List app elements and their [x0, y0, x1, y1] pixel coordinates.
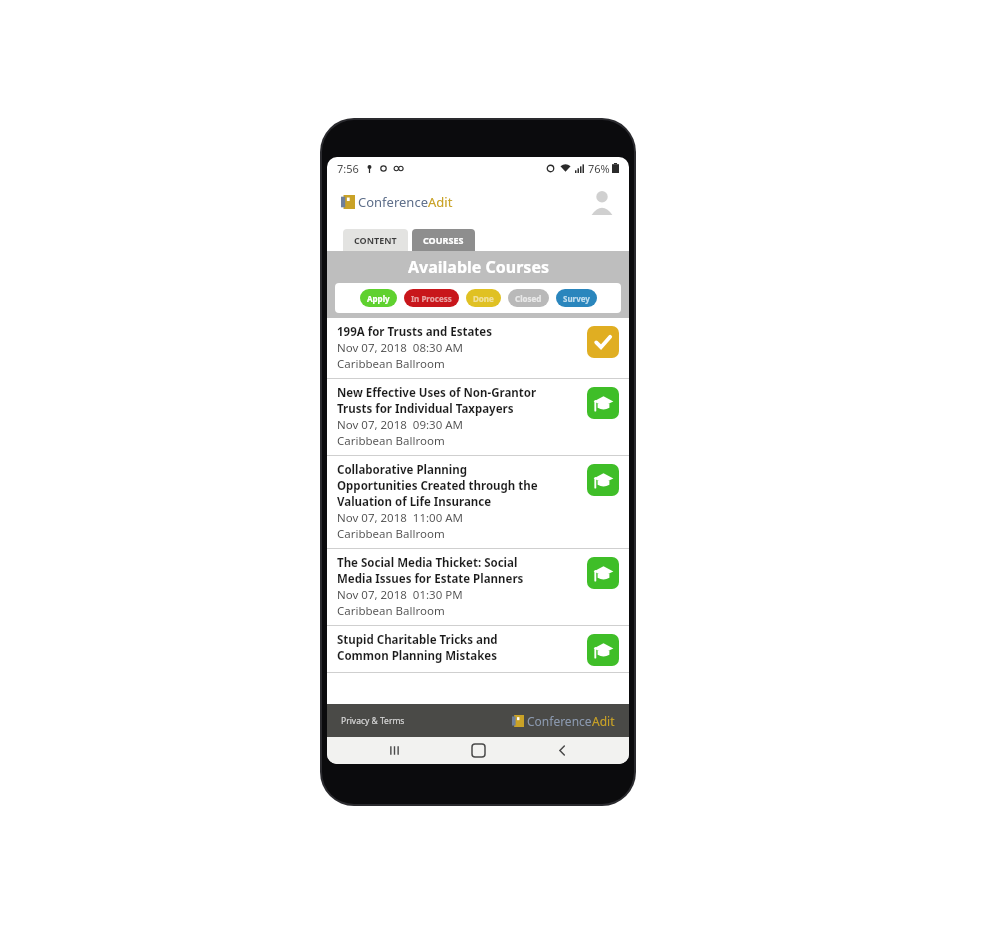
- staticText: 199A for Trusts and Estates: [337, 324, 492, 340]
- button[interactable]: Course: [587, 464, 619, 496]
- staticText: Valuation of Life Insurance: [337, 494, 492, 510]
- staticText: Trusts for Individual Taxpayers: [337, 401, 514, 417]
- button[interactable]: The Social Media Thicket: Social: [327, 549, 629, 626]
- button[interactable]: Stupid Charitable Tricks and: [327, 626, 629, 673]
- button[interactable]: CONTENT: [343, 229, 408, 251]
- button[interactable]: Apply: [360, 289, 397, 307]
- staticText: Caribbean Ballroom: [337, 603, 445, 619]
- staticText: Adit: [592, 713, 615, 729]
- staticText: Available Courses: [408, 256, 549, 278]
- staticText: Caribbean Ballroom: [337, 356, 445, 372]
- button[interactable]: Privacy & Terms: [341, 715, 405, 727]
- staticText: Caribbean Ballroom: [337, 433, 445, 449]
- staticText: Conference: [358, 193, 428, 211]
- button[interactable]: Back: [545, 737, 579, 764]
- button[interactable]: Profile: [587, 187, 617, 217]
- staticText: Adit: [428, 193, 453, 211]
- staticText: Apply: [367, 293, 390, 304]
- button[interactable]: COURSES: [412, 229, 475, 251]
- staticText: Nov 07, 2018 09:30 AM: [337, 417, 463, 433]
- staticText: Nov 07, 2018 01:30 PM: [337, 587, 463, 603]
- staticText: Closed: [515, 293, 542, 304]
- button[interactable]: Closed: [508, 289, 549, 307]
- button[interactable]: New Effective Uses of Non-Grantor: [327, 379, 629, 456]
- staticText: Conference: [527, 713, 592, 729]
- staticText: Collaborative Planning: [337, 462, 468, 478]
- staticText: Opportunities Created through the: [337, 478, 538, 494]
- staticText: In Process: [411, 293, 452, 304]
- button[interactable]: Recents: [377, 737, 411, 764]
- button[interactable]: Completed: [587, 326, 619, 358]
- button[interactable]: 199A for Trusts and Estates: [327, 318, 629, 379]
- staticText: Privacy & Terms: [341, 715, 405, 727]
- staticText: Common Planning Mistakes: [337, 648, 497, 664]
- staticText: COURSES: [423, 234, 464, 246]
- button[interactable]: Home: [461, 737, 495, 764]
- staticText: 76%: [588, 161, 610, 176]
- staticText: Stupid Charitable Tricks and: [337, 632, 498, 648]
- button[interactable]: Course: [587, 387, 619, 419]
- button[interactable]: Done: [466, 289, 501, 307]
- staticText: New Effective Uses of Non-Grantor: [337, 385, 537, 401]
- staticText: 7:56: [337, 161, 359, 176]
- button[interactable]: Course: [587, 557, 619, 589]
- staticText: Nov 07, 2018 11:00 AM: [337, 510, 463, 526]
- button[interactable]: Survey: [556, 289, 597, 307]
- staticText: The Social Media Thicket: Social: [337, 555, 518, 571]
- staticText: Survey: [563, 293, 590, 304]
- button[interactable]: Course: [587, 634, 619, 666]
- staticText: CONTENT: [354, 234, 397, 246]
- staticText: Media Issues for Estate Planners: [337, 571, 524, 587]
- staticText: Done: [473, 293, 494, 304]
- staticText: Nov 07, 2018 08:30 AM: [337, 340, 463, 356]
- staticText: Caribbean Ballroom: [337, 526, 445, 542]
- button[interactable]: Collaborative Planning: [327, 456, 629, 549]
- button[interactable]: In Process: [404, 289, 459, 307]
